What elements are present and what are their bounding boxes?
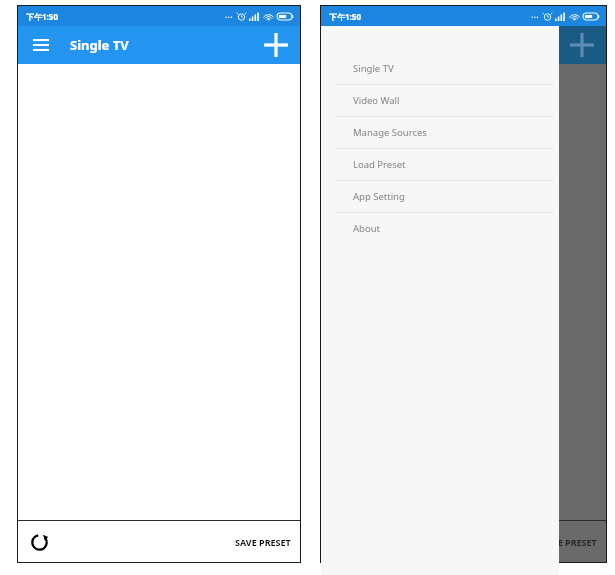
button[interactable]: Manage Sources [321, 117, 559, 149]
staticText: 下午1:50 [329, 11, 361, 22]
staticText: Video Wall [353, 94, 400, 107]
button[interactable]: Add [566, 29, 598, 61]
button[interactable]: App Setting [321, 181, 559, 213]
staticText: SAVE PRESET [235, 536, 291, 548]
button[interactable]: Single TV [321, 53, 559, 85]
button[interactable]: SAVE PRESET [235, 536, 291, 548]
button[interactable]: About [321, 213, 559, 244]
staticText: Single TV [70, 36, 129, 54]
button[interactable]: Open navigation drawer [26, 30, 56, 60]
staticText: Load Preset [353, 158, 406, 171]
staticText: 下午1:50 [26, 11, 58, 22]
button[interactable]: Add [260, 29, 292, 61]
button[interactable]: SAVE PRESET [541, 536, 597, 548]
staticText: SAVE PRESET [541, 536, 597, 548]
button[interactable]: Load Preset [321, 149, 559, 181]
staticText: App Setting [353, 190, 405, 203]
staticText: About [353, 222, 380, 235]
button[interactable]: Video Wall [321, 85, 559, 117]
staticText: Manage Sources [353, 126, 427, 139]
button[interactable]: Refresh [24, 527, 54, 557]
staticText: Single TV [353, 62, 394, 75]
